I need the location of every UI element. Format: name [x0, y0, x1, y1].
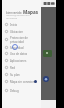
staticText: Aplicaciones — [10, 59, 27, 63]
staticText: usuario@correo.com — [6, 13, 30, 16]
staticText: Mapa sin conexion — [10, 80, 35, 84]
staticText: Inicio — [10, 23, 18, 27]
button[interactable]: Seguridad — [2, 44, 41, 51]
button[interactable]: Ubicacion — [2, 28, 41, 35]
button[interactable]: Debug — [2, 87, 41, 94]
button[interactable] — [43, 50, 52, 57]
button[interactable]: Red — [2, 64, 41, 71]
button[interactable]: Aplicaciones — [2, 57, 41, 64]
staticText: Uso de datos — [10, 52, 28, 56]
button[interactable]: Proteccion de privacidad — [2, 35, 41, 44]
staticText: Debug — [10, 89, 19, 93]
staticText: Mapas — [23, 9, 39, 15]
staticText: Mi cuenta — [6, 16, 18, 19]
staticText: Su plan — [10, 73, 20, 77]
button[interactable]: Uso de datos — [2, 50, 41, 57]
button[interactable]: Su plan — [2, 71, 41, 78]
staticText: Seguridad — [10, 46, 24, 50]
button[interactable]: Navigate — [43, 76, 49, 82]
staticText: Proteccion de privacidad — [10, 36, 28, 43]
button[interactable]: Inicio — [2, 21, 41, 28]
button[interactable]: Mapa sin conexion — [2, 78, 41, 85]
staticText: bienvenido — [6, 11, 23, 15]
staticText: Red — [10, 66, 16, 70]
staticText: Ubicacion — [10, 30, 23, 34]
